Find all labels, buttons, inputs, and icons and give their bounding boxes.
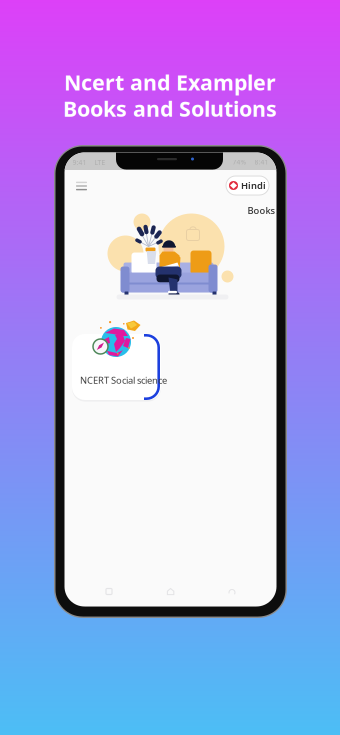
staticText: LTE — [94, 158, 105, 167]
staticText: NCERT Social science — [80, 374, 167, 386]
button[interactable]: Recents — [92, 581, 126, 601]
staticText: Books — [247, 204, 275, 217]
button[interactable]: Menu — [72, 178, 91, 194]
staticText: Books and Solutions — [63, 94, 277, 123]
staticText: 74% — [232, 158, 246, 166]
staticText: 8:41 — [254, 158, 268, 166]
button[interactable]: Home — [153, 581, 187, 601]
staticText: Ncert and Exampler — [64, 68, 276, 96]
button[interactable]: Hindi — [226, 176, 269, 195]
staticText: 9:41 — [72, 158, 86, 167]
button[interactable]: NCERT Social science — [72, 334, 161, 400]
staticText: Hindi — [241, 179, 266, 192]
button[interactable]: Books — [247, 205, 277, 215]
